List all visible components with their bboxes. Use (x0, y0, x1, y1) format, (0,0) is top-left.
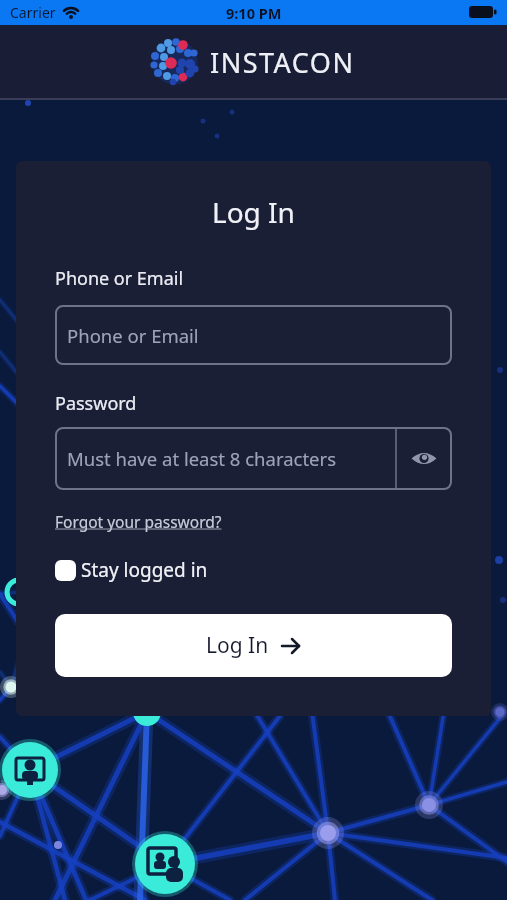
button[interactable]: Must have at least 8 characters (55, 427, 452, 490)
button[interactable]: Stay logged in (55, 557, 208, 583)
staticText: Stay logged in (81, 557, 208, 583)
staticText: Carrier (10, 3, 56, 22)
button[interactable]: Phone or Email (55, 305, 452, 365)
staticText: INSTACON (210, 44, 355, 81)
staticText: Log In (212, 193, 295, 231)
staticText: Phone or Email (67, 323, 199, 348)
staticText: 9:10 PM (226, 3, 282, 23)
button[interactable]: Log In (55, 614, 452, 677)
staticText: Password (55, 391, 137, 416)
staticText: Phone or Email (55, 266, 184, 291)
button[interactable]: Forgot your password? (55, 511, 222, 532)
staticText: Must have at least 8 characters (67, 446, 337, 471)
staticText: Log In (206, 631, 269, 660)
